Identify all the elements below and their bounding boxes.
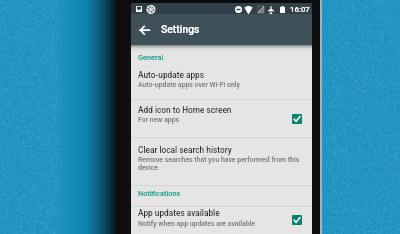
button[interactable]: Add icon to Home screen: [131, 100, 312, 137]
button[interactable]: App updates available: [131, 207, 312, 234]
staticText: Clear local search history: [138, 145, 232, 155]
staticText: Notify when app updates are available: [138, 220, 256, 228]
staticText: For new apps: [138, 116, 180, 124]
staticText: Auto-update apps: [138, 70, 205, 80]
button[interactable]: Auto-update apps: [131, 64, 312, 99]
staticText: Settings: [161, 23, 200, 35]
staticText: device: [138, 164, 158, 172]
staticText: App updates available: [138, 208, 220, 218]
staticText: 16:07: [290, 5, 310, 14]
staticText: Remove searches that you have performed …: [138, 156, 300, 164]
staticText: Notifications: [138, 189, 181, 198]
staticText: Add icon to Home screen: [138, 105, 232, 115]
staticText: General: [138, 53, 164, 62]
button[interactable]: Clear local search history: [131, 138, 312, 184]
button[interactable]: Navigate up: [134, 20, 155, 40]
staticText: Auto-update apps over Wi-Fi only: [138, 81, 240, 89]
